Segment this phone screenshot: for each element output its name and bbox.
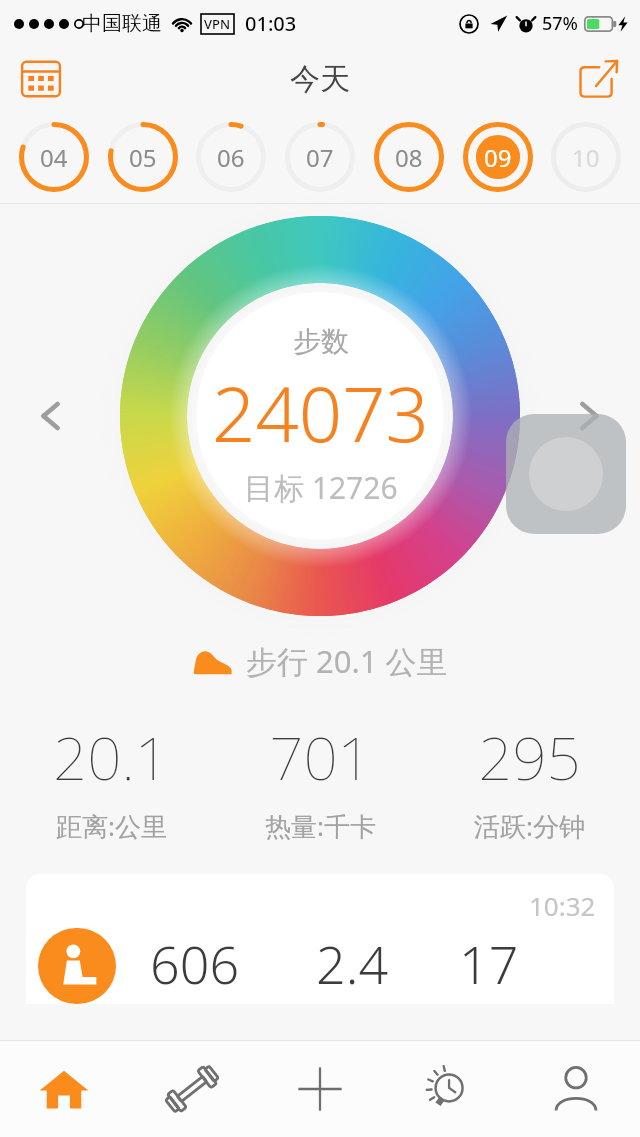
button[interactable]: 06 [192, 118, 270, 196]
button[interactable]: Capture screenshot [506, 414, 626, 534]
button[interactable]: 701 [222, 716, 418, 844]
staticText: 2.4 [316, 928, 389, 999]
staticText: 05 [129, 141, 157, 174]
staticText: 目标 12726 [244, 467, 398, 508]
button[interactable]: 295 [431, 716, 627, 844]
staticText: 17 [459, 928, 519, 999]
staticText: 07 [306, 141, 334, 174]
button[interactable]: Add record [256, 1040, 384, 1137]
staticText: 701 [269, 716, 372, 798]
button[interactable]: 20.1 [13, 716, 209, 844]
staticText: 热量:千卡 [265, 808, 376, 844]
staticText: 606 [150, 928, 240, 999]
staticText: 10 [572, 141, 600, 174]
button[interactable]: Home [0, 1040, 128, 1137]
button[interactable]: 09 [459, 118, 537, 196]
staticText: 20.1 [53, 716, 169, 798]
button[interactable]: Previous day [22, 387, 80, 445]
staticText: 09 [484, 141, 512, 174]
button[interactable]: Calendar [12, 50, 70, 108]
staticText: 10:32 [529, 888, 596, 923]
button[interactable]: 07 [281, 118, 359, 196]
button[interactable]: Insights [384, 1040, 512, 1137]
staticText: 步数 [293, 324, 349, 359]
staticText: 今天 [290, 60, 350, 98]
staticText: 295 [478, 716, 581, 798]
button[interactable]: 10 [547, 118, 625, 196]
staticText: 24073 [212, 361, 429, 465]
button[interactable]: 04 [15, 118, 93, 196]
staticText: 08 [395, 141, 423, 174]
staticText: 距离:公里 [56, 808, 167, 844]
staticText: 活跃:分钟 [474, 808, 585, 844]
button[interactable]: 08 [370, 118, 448, 196]
staticText: 04 [40, 141, 68, 174]
button[interactable]: Profile [512, 1040, 640, 1137]
button[interactable]: Next day [560, 387, 618, 445]
staticText: 01:03 [245, 10, 297, 37]
staticText: 57% [542, 11, 578, 36]
button[interactable]: 步行 20.1 公里 [0, 636, 640, 686]
staticText: VPN [204, 15, 231, 33]
button[interactable]: 05 [104, 118, 182, 196]
button[interactable]: 10:32 [26, 874, 614, 1004]
staticText: 中国联通 [82, 11, 162, 36]
staticText: 06 [217, 141, 245, 174]
button[interactable]: Workout [128, 1040, 256, 1137]
staticText: 步行 20.1 公里 [246, 640, 448, 682]
button[interactable]: Share [570, 50, 628, 108]
